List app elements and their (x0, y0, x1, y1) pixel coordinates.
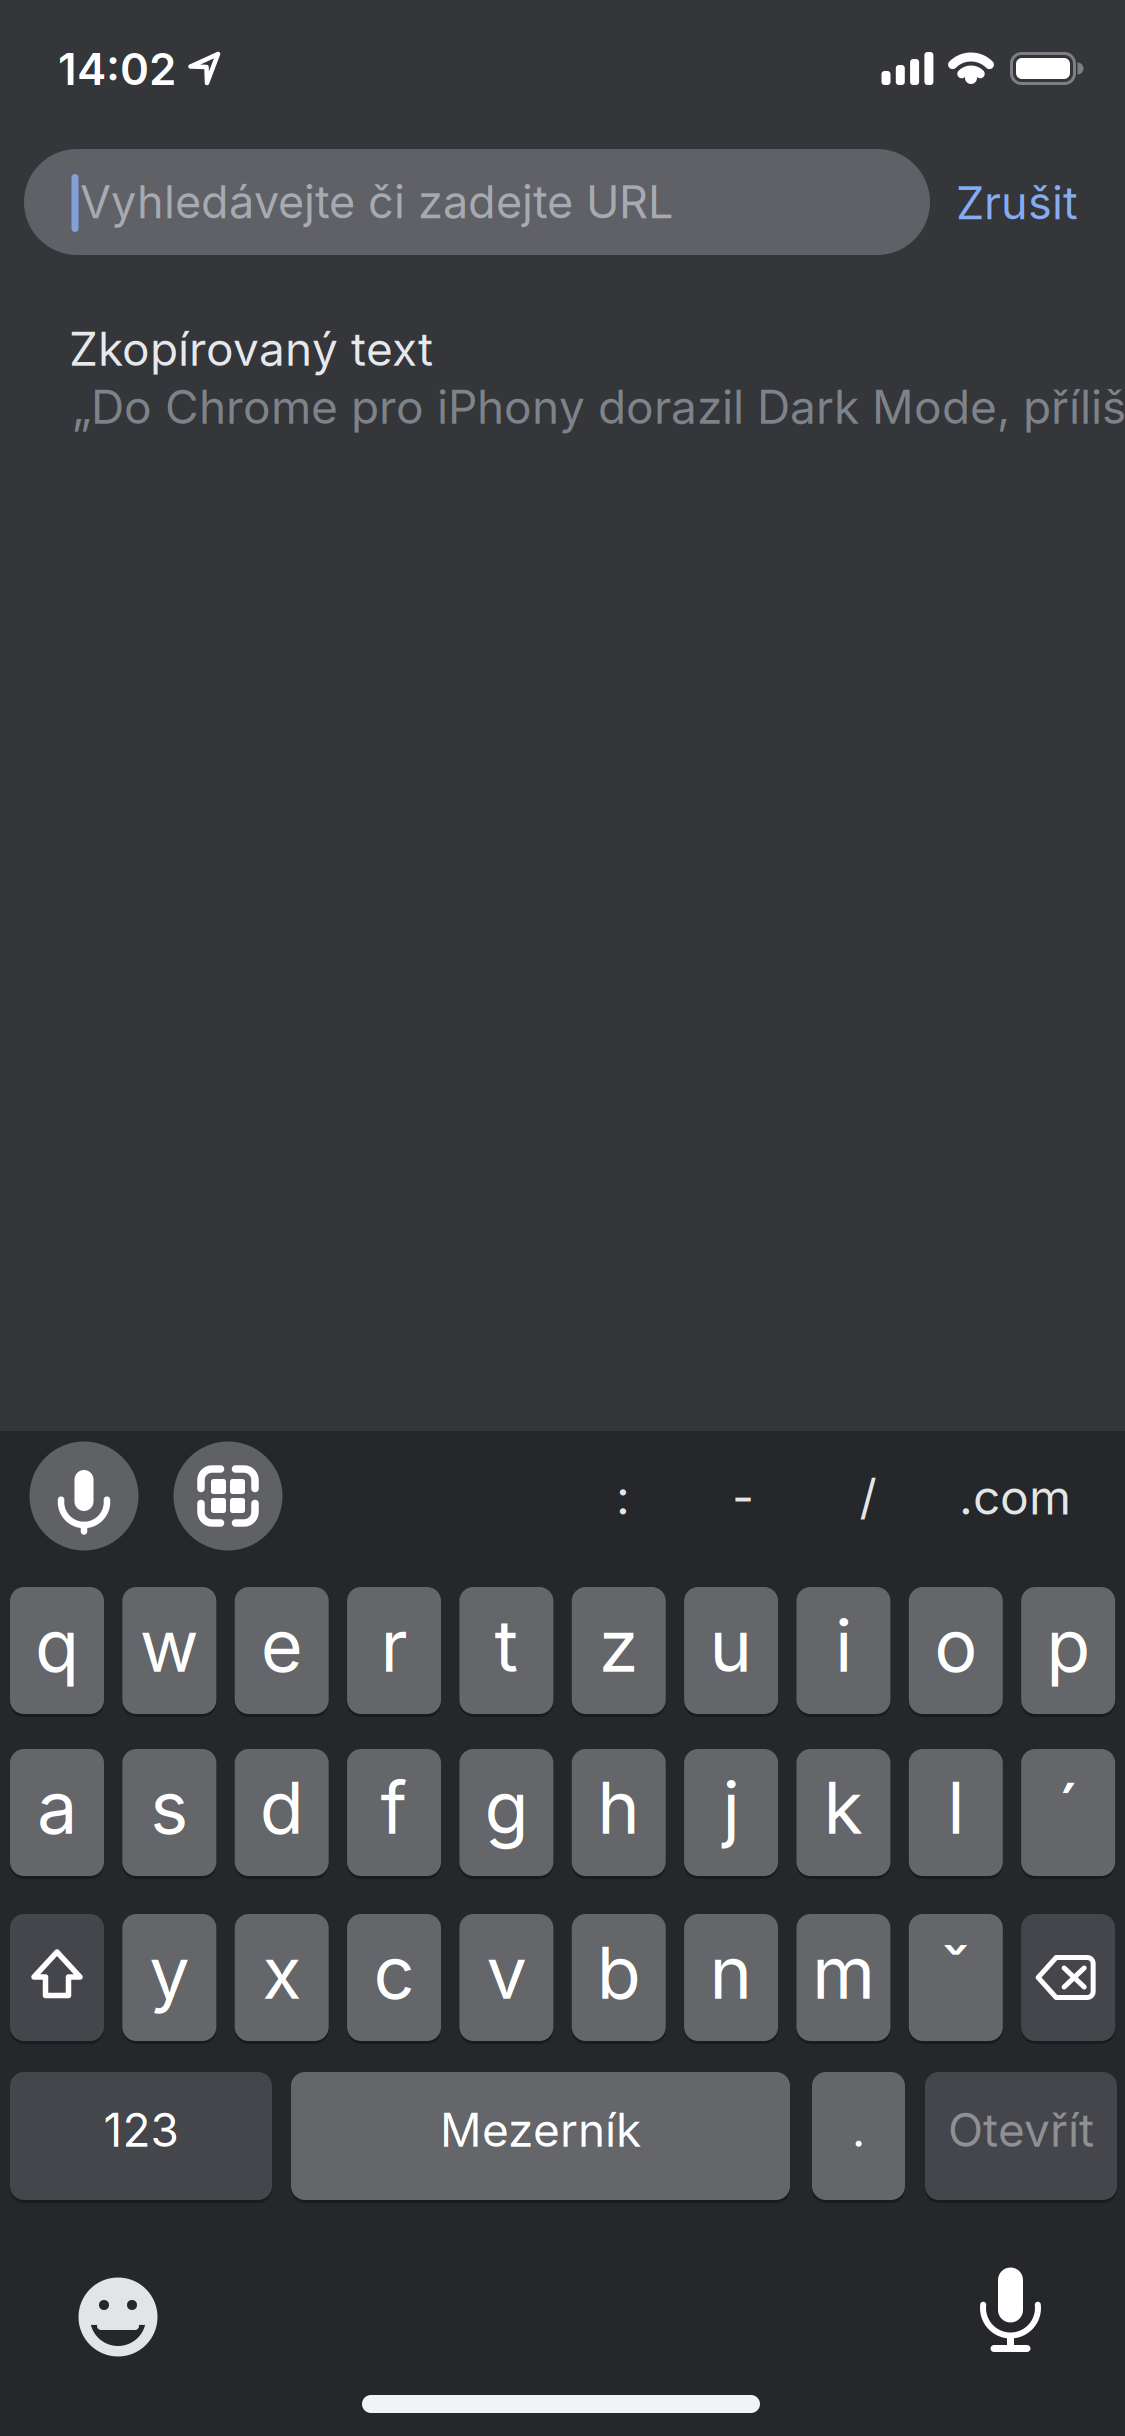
staticText: h (597, 1764, 640, 1851)
button[interactable]: b (572, 1914, 666, 2041)
staticText: Otevřít (948, 2102, 1094, 2158)
button[interactable]: ˇ (909, 1914, 1003, 2041)
button[interactable]: - (668, 1437, 818, 1557)
button[interactable]: Smazat (1021, 1914, 1115, 2041)
button[interactable]: d (235, 1749, 329, 1876)
button[interactable]: i (796, 1587, 890, 1714)
button[interactable]: .com (940, 1437, 1090, 1557)
button[interactable]: 123 (10, 2072, 272, 2200)
staticText: .com (959, 1468, 1071, 1526)
staticText: Mezerník (440, 2102, 641, 2158)
staticText: x (262, 1929, 301, 2016)
staticText: g (484, 1764, 528, 1851)
button[interactable]: ´ (1021, 1749, 1115, 1876)
staticText: Zrušit (956, 176, 1078, 230)
staticText: / (859, 1468, 876, 1526)
staticText: p (1046, 1602, 1090, 1689)
staticText: s (150, 1764, 188, 1851)
staticText: k (823, 1764, 863, 1851)
button[interactable]: Diktování (956, 2253, 1066, 2363)
button[interactable]: Vyhledávejte či zadejte URL (24, 149, 930, 255)
staticText: f (380, 1764, 407, 1851)
button[interactable]: z (572, 1587, 666, 1714)
button[interactable]: o (909, 1587, 1003, 1714)
staticText: t (494, 1602, 518, 1689)
button[interactable]: r (347, 1587, 441, 1714)
button[interactable]: Shift (10, 1914, 104, 2041)
button[interactable]: Emoji (68, 2267, 168, 2367)
button[interactable]: s (122, 1749, 216, 1876)
button[interactable]: w (122, 1587, 216, 1714)
button[interactable]: e (235, 1587, 329, 1714)
staticText: a (37, 1764, 77, 1851)
staticText: b (597, 1929, 641, 2016)
staticText: : (616, 1468, 630, 1526)
button[interactable]: a (10, 1749, 104, 1876)
staticText: ´ (1057, 1768, 1080, 1855)
button[interactable]: Zkopírovaný text (0, 0, 1125, 2436)
staticText: m (812, 1929, 875, 2016)
button[interactable]: l (909, 1749, 1003, 1876)
button[interactable]: t (459, 1587, 553, 1714)
button[interactable]: m (796, 1914, 890, 2041)
button[interactable]: . (812, 2072, 905, 2200)
staticText: o (934, 1602, 977, 1689)
staticText: j (723, 1764, 740, 1851)
staticText: n (710, 1929, 753, 2016)
staticText: . (852, 2102, 865, 2158)
button[interactable]: h (572, 1749, 666, 1876)
button[interactable]: k (796, 1749, 890, 1876)
button[interactable]: : (548, 1437, 698, 1557)
button[interactable]: u (684, 1587, 778, 1714)
staticText: v (486, 1929, 526, 2016)
staticText: c (373, 1929, 414, 2016)
button[interactable]: c (347, 1914, 441, 2041)
button[interactable]: Skener QR kódů (173, 1441, 282, 1550)
staticText: Zkopírovaný text (69, 321, 433, 377)
staticText: „Do Chrome pro iPhony dorazil Dark Mode,… (72, 379, 1125, 435)
button[interactable]: / (793, 1437, 943, 1557)
staticText: d (260, 1764, 304, 1851)
button[interactable]: q (10, 1587, 104, 1714)
staticText: Vyhledávejte či zadejte URL (80, 175, 673, 229)
button[interactable]: Hlasové vyhledávání (29, 1441, 138, 1550)
staticText: ˇ (941, 1930, 971, 2017)
button[interactable]: g (459, 1749, 553, 1876)
staticText: l (947, 1764, 964, 1851)
staticText: e (261, 1602, 303, 1689)
staticText: i (835, 1602, 852, 1689)
staticText: y (149, 1929, 189, 2016)
staticText: - (732, 1468, 754, 1526)
staticText: 123 (103, 2102, 178, 2158)
button[interactable]: Zrušit (897, 163, 1125, 243)
staticText: q (35, 1602, 79, 1689)
button[interactable]: v (459, 1914, 553, 2041)
button[interactable]: n (684, 1914, 778, 2041)
button[interactable]: Mezerník (291, 2072, 790, 2200)
button[interactable]: f (347, 1749, 441, 1876)
staticText: z (599, 1602, 639, 1689)
button[interactable]: y (122, 1914, 216, 2041)
staticText: r (380, 1602, 407, 1689)
button[interactable]: x (235, 1914, 329, 2041)
button[interactable]: p (1021, 1587, 1115, 1714)
staticText: u (710, 1602, 753, 1689)
staticText: w (140, 1602, 199, 1689)
button[interactable]: j (684, 1749, 778, 1876)
button[interactable]: Otevřít (925, 2072, 1117, 2200)
staticText: 14:02 (58, 42, 176, 96)
